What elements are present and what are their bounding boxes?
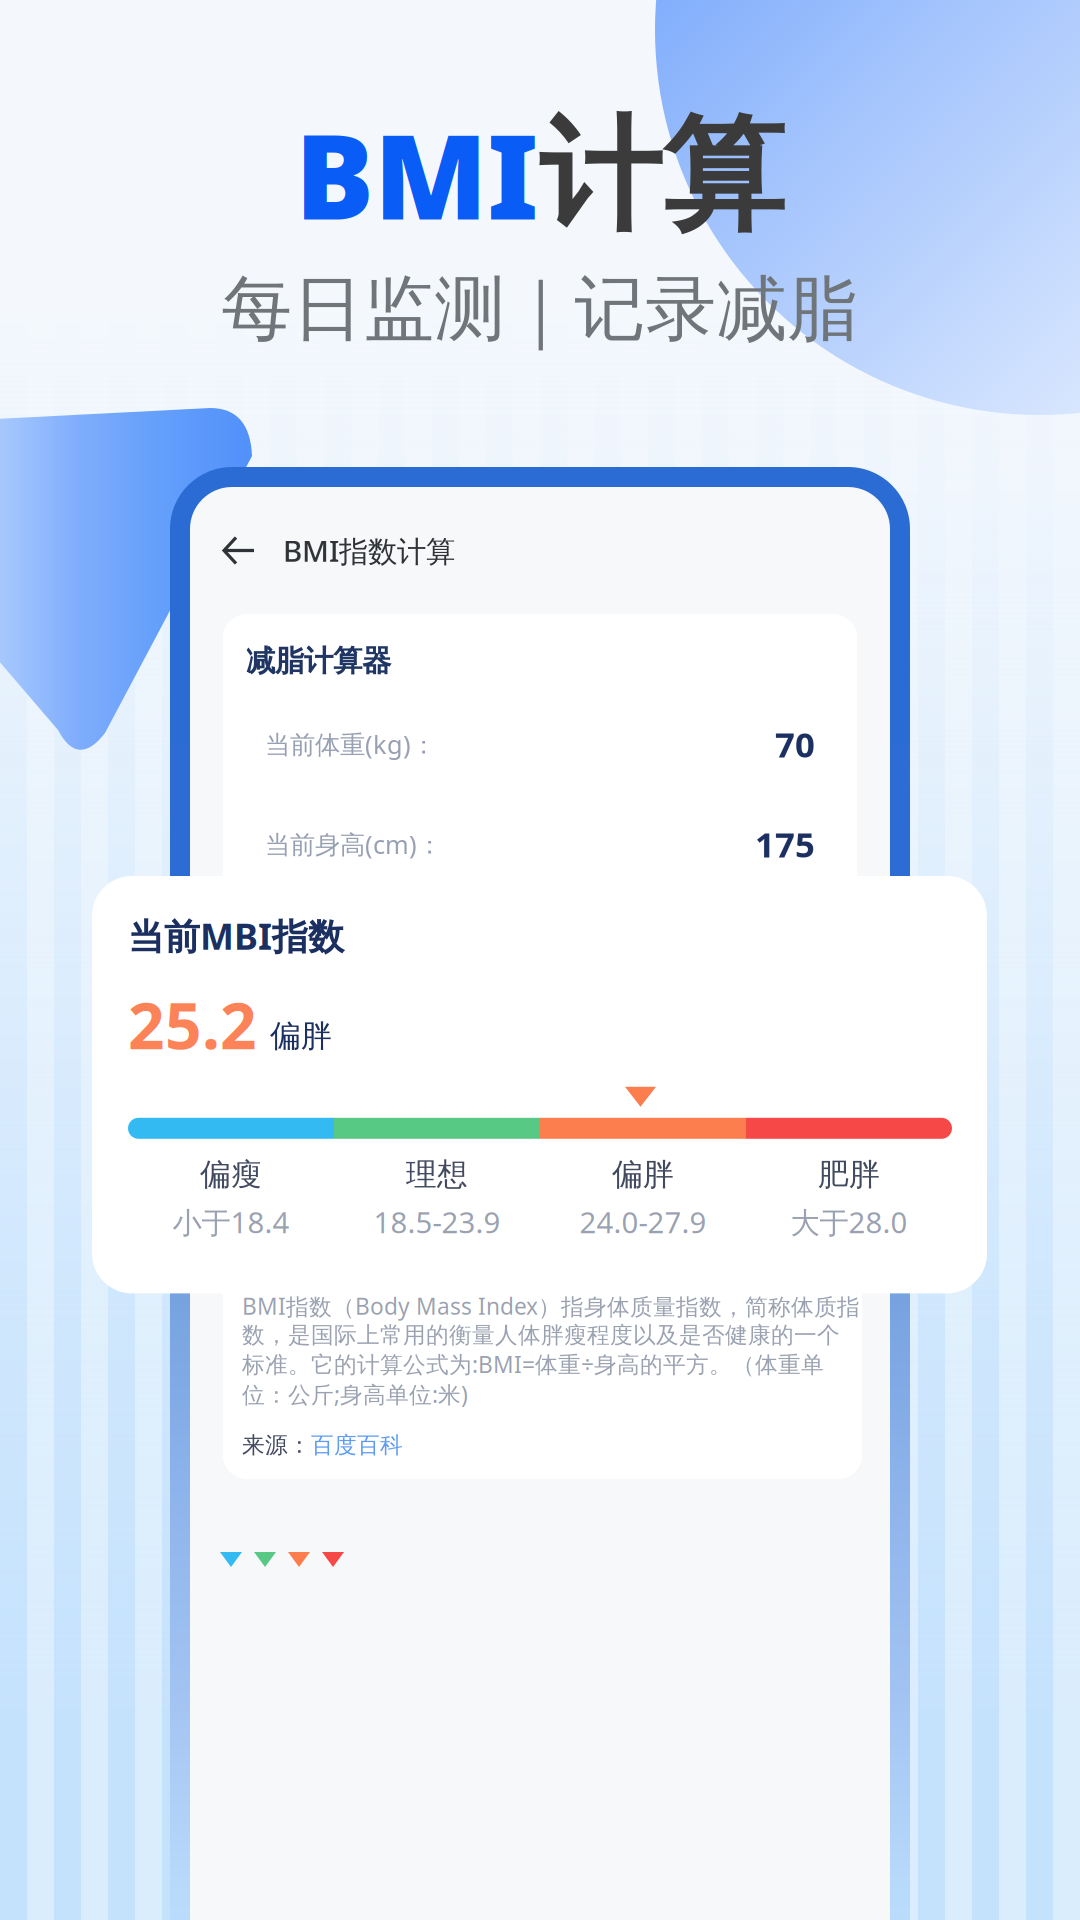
staticText: 每日监测｜记录减脂	[221, 266, 858, 353]
staticText: 当前身高(cm)：	[265, 827, 442, 861]
staticText: 18.5-23.9	[373, 1202, 500, 1241]
staticText: BMI指数计算	[283, 531, 455, 570]
button[interactable]: 百度百科	[311, 1431, 403, 1459]
staticText: 25.2	[128, 982, 257, 1067]
staticText: 大于28.0	[790, 1202, 907, 1241]
staticText: 减脂计算器	[246, 643, 391, 679]
staticText: 标准。它的计算公式为:BMI=体重÷身高的平方。（体重单	[242, 1349, 824, 1379]
staticText: 来源：	[242, 1431, 311, 1459]
staticText: 数，是国际上常用的衡量人体胖瘦程度以及是否健康的一个	[242, 1321, 840, 1349]
button[interactable]: Back	[206, 516, 272, 584]
staticText: 偏瘦	[200, 1156, 262, 1193]
staticText: 计算	[539, 101, 785, 252]
staticText: 理想	[406, 1156, 468, 1193]
staticText: 百度百科	[311, 1431, 403, 1459]
staticText: 偏胖	[612, 1156, 674, 1193]
staticText: BMI指数（Body Mass Index）指身体质量指数，简称体质指	[242, 1291, 860, 1321]
staticText: 70	[775, 721, 815, 767]
staticText: 肥胖	[818, 1156, 880, 1193]
staticText: 当前MBI指数	[128, 912, 344, 960]
staticText: 175	[755, 821, 815, 867]
staticText: 当前体重(kg)：	[265, 727, 436, 761]
staticText: 偏胖	[270, 1017, 332, 1055]
staticText: 小于18.4	[172, 1202, 289, 1241]
staticText: 24.0-27.9	[579, 1202, 706, 1241]
staticText: BMI	[295, 96, 539, 252]
staticText: 位：公斤;身高单位:米)	[242, 1379, 468, 1409]
